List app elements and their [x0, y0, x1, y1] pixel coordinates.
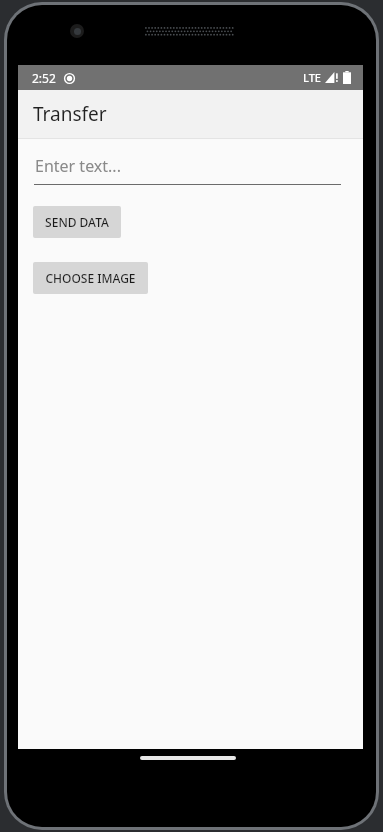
staticText: SEND DATA — [45, 214, 109, 230]
staticText: 2:52 — [32, 70, 56, 86]
button[interactable]: SEND DATA — [33, 206, 121, 238]
staticText: Transfer — [33, 101, 107, 127]
button[interactable]: Enter text... — [34, 155, 341, 185]
staticText: Enter text... — [35, 155, 121, 177]
staticText: LTE — [303, 70, 321, 85]
other: Home gesture — [140, 756, 236, 760]
staticText: CHOOSE IMAGE — [45, 270, 136, 286]
button[interactable]: CHOOSE IMAGE — [33, 262, 148, 294]
